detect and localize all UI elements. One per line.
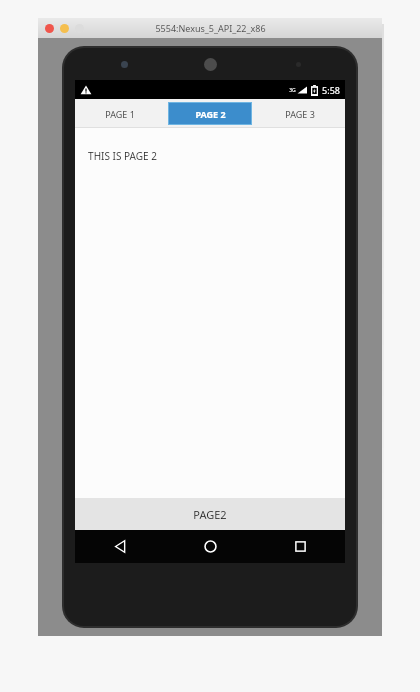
staticText: 3G	[289, 87, 296, 94]
staticText: 5:58	[322, 84, 340, 96]
staticText: 5554:Nexus_5_API_22_x86	[155, 22, 266, 34]
button[interactable]: Recent apps	[255, 530, 345, 563]
button[interactable]: Home	[165, 530, 255, 563]
staticText: PAGE2	[193, 507, 227, 522]
button[interactable]: PAGE 2	[165, 99, 255, 128]
staticText: PAGE 2	[195, 108, 226, 120]
staticText: PAGE 1	[105, 108, 135, 120]
button[interactable]: PAGE2	[75, 498, 345, 530]
button[interactable]: Back	[75, 530, 165, 563]
staticText: PAGE 3	[285, 108, 315, 120]
button[interactable]: PAGE 1	[75, 99, 165, 128]
staticText: THIS IS PAGE 2	[88, 149, 157, 163]
button[interactable]: PAGE 3	[255, 99, 345, 128]
